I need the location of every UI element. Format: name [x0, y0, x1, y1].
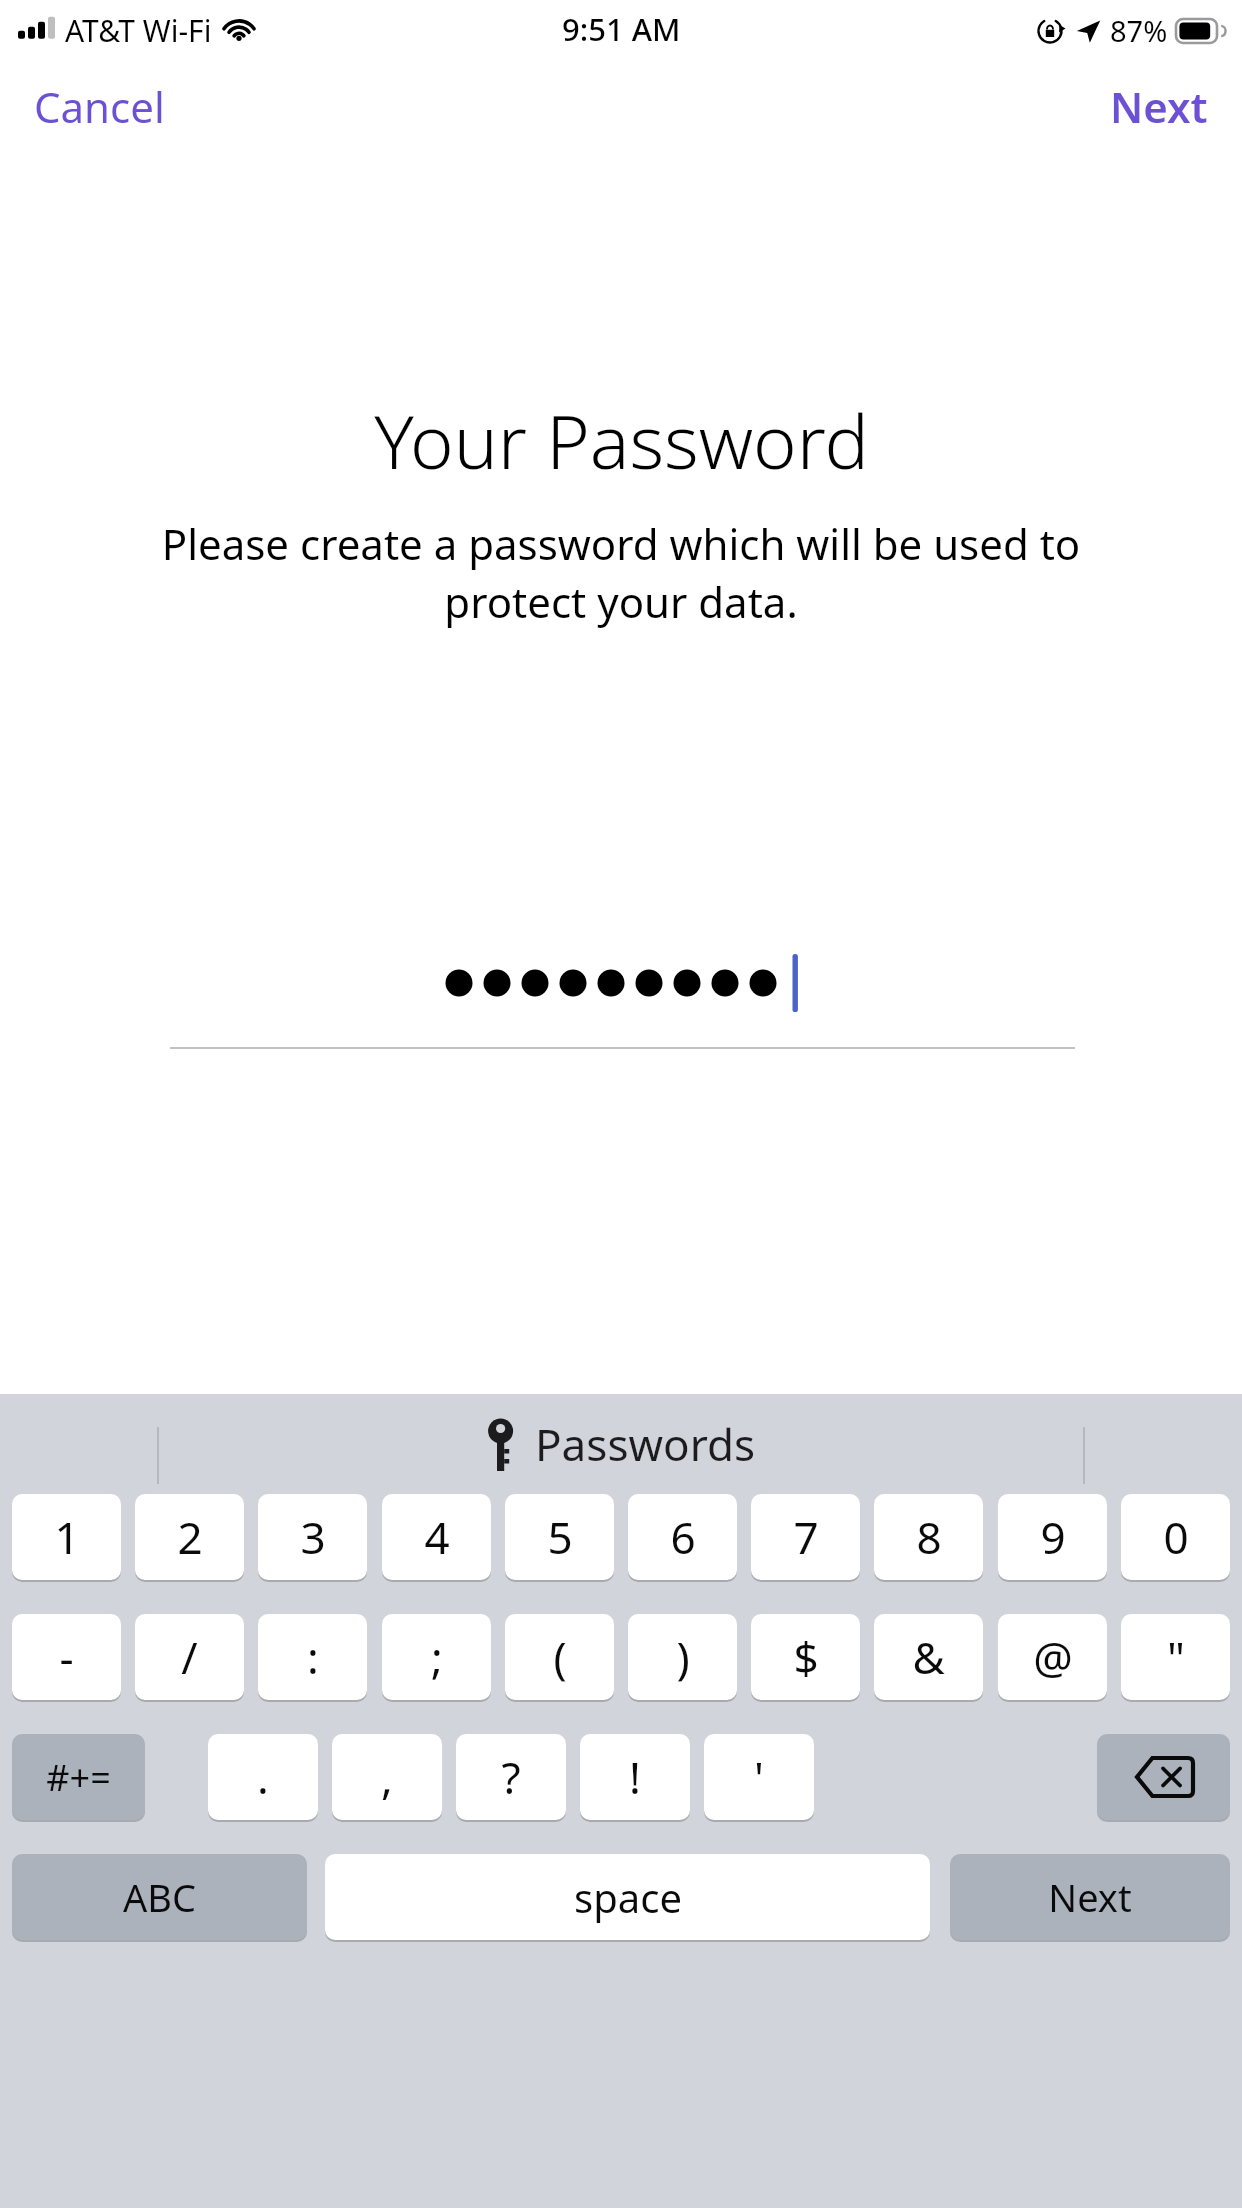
- staticText: 7: [793, 1507, 819, 1567]
- button[interactable]: 8: [874, 1494, 983, 1580]
- staticText: 9:51 AM: [562, 8, 681, 50]
- staticText: Please create a password which will be u…: [92, 515, 1150, 630]
- staticText: space: [574, 1870, 682, 1924]
- button[interactable]: @: [998, 1614, 1107, 1700]
- staticText: 2: [177, 1507, 203, 1567]
- staticText: 87%: [1110, 11, 1168, 50]
- staticText: Your Password: [374, 390, 869, 491]
- staticText: -: [59, 1627, 74, 1687]
- staticText: @: [1033, 1627, 1073, 1687]
- staticText: 9: [1040, 1507, 1066, 1567]
- staticText: /: [181, 1627, 198, 1687]
- staticText: :: [307, 1627, 319, 1687]
- button[interactable]: Next: [950, 1854, 1230, 1940]
- staticText: 1: [54, 1507, 80, 1567]
- button[interactable]: ": [1121, 1614, 1230, 1700]
- staticText: 6: [670, 1507, 696, 1567]
- button[interactable]: 3: [258, 1494, 367, 1580]
- button[interactable]: Backspace: [1097, 1734, 1230, 1820]
- staticText: (: [553, 1627, 567, 1687]
- staticText: 4: [424, 1507, 450, 1567]
- button[interactable]: 4: [382, 1494, 491, 1580]
- staticText: ": [1167, 1627, 1185, 1687]
- button[interactable]: Passwords: [487, 1414, 756, 1474]
- staticText: !: [629, 1747, 641, 1807]
- staticText: Next: [1048, 1871, 1132, 1923]
- button[interactable]: ': [704, 1734, 814, 1820]
- button[interactable]: .: [208, 1734, 318, 1820]
- button[interactable]: Cancel: [22, 72, 177, 132]
- button[interactable]: ABC: [12, 1854, 307, 1940]
- button[interactable]: [0, 930, 1242, 1090]
- staticText: &: [912, 1627, 945, 1687]
- button[interactable]: 5: [505, 1494, 614, 1580]
- staticText: ): [676, 1627, 690, 1687]
- button[interactable]: ?: [456, 1734, 566, 1820]
- button[interactable]: !: [580, 1734, 690, 1820]
- button[interactable]: /: [135, 1614, 244, 1700]
- staticText: ;: [431, 1627, 443, 1687]
- button[interactable]: 2: [135, 1494, 244, 1580]
- button[interactable]: ,: [332, 1734, 442, 1820]
- staticText: .: [257, 1747, 269, 1807]
- button[interactable]: #+=: [12, 1734, 145, 1820]
- button[interactable]: $: [751, 1614, 860, 1700]
- staticText: Next: [1110, 78, 1208, 126]
- button[interactable]: 6: [628, 1494, 737, 1580]
- staticText: 5: [547, 1507, 573, 1567]
- button[interactable]: space: [325, 1854, 930, 1940]
- button[interactable]: 9: [998, 1494, 1107, 1580]
- staticText: ?: [501, 1747, 521, 1807]
- button[interactable]: :: [258, 1614, 367, 1700]
- button[interactable]: Next: [1098, 72, 1220, 132]
- staticText: ,: [381, 1747, 393, 1807]
- staticText: #+=: [46, 1753, 111, 1802]
- staticText: 0: [1163, 1507, 1189, 1567]
- button[interactable]: 7: [751, 1494, 860, 1580]
- staticText: $: [793, 1627, 819, 1687]
- button[interactable]: -: [12, 1614, 121, 1700]
- staticText: ABC: [123, 1871, 196, 1923]
- staticText: ': [754, 1747, 764, 1807]
- staticText: AT&T Wi-Fi: [65, 10, 212, 51]
- staticText: Passwords: [535, 1414, 756, 1474]
- button[interactable]: (: [505, 1614, 614, 1700]
- staticText: 3: [300, 1507, 326, 1567]
- button[interactable]: ;: [382, 1614, 491, 1700]
- staticText: 8: [916, 1507, 942, 1567]
- button[interactable]: 1: [12, 1494, 121, 1580]
- button[interactable]: 0: [1121, 1494, 1230, 1580]
- staticText: Cancel: [34, 78, 165, 126]
- button[interactable]: &: [874, 1614, 983, 1700]
- button[interactable]: ): [628, 1614, 737, 1700]
